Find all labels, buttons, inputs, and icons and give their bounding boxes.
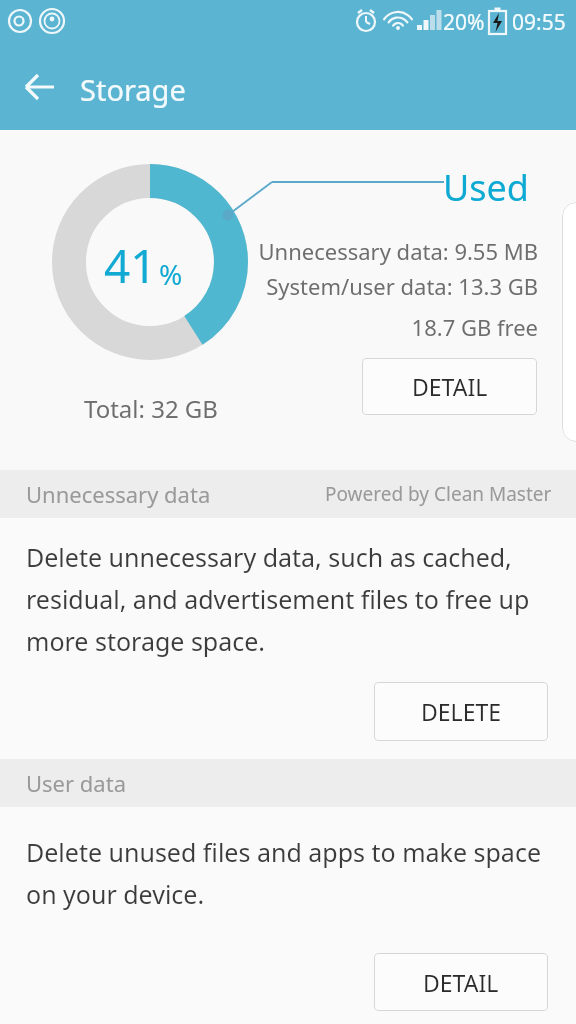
staticText: DETAIL [423,967,499,998]
staticText: Delete unused files and apps to make spa… [26,835,541,869]
staticText: Storage [80,70,186,109]
button[interactable]: DELETE [374,682,548,741]
staticText: System/user data: 13.3 GB [266,271,538,301]
staticText: 09:55 [512,8,566,37]
button[interactable]: DETAIL [374,953,548,1011]
staticText: on your device. [26,877,205,911]
staticText: 20% [443,8,485,37]
staticText: Unnecessary data [26,479,211,509]
button[interactable]: Back [14,60,68,114]
button[interactable]: DETAIL [362,358,537,415]
staticText: % [159,255,183,293]
staticText: Total: 32 GB [84,392,218,425]
button[interactable] [562,202,576,442]
staticText: User data [26,768,126,798]
staticText: residual, and advertisement files to fre… [26,582,530,616]
staticText: DETAIL [412,371,488,402]
staticText: Delete unnecessary data, such as cached, [26,540,512,574]
staticText: more storage space. [26,624,266,658]
staticText: Powered by Clean Master [325,481,552,507]
staticText: Used [443,163,530,212]
staticText: DELETE [421,696,501,727]
staticText: 41 [104,234,157,297]
staticText: 18.7 GB free [411,312,538,342]
staticText: Unnecessary data: 9.55 MB [258,236,538,266]
